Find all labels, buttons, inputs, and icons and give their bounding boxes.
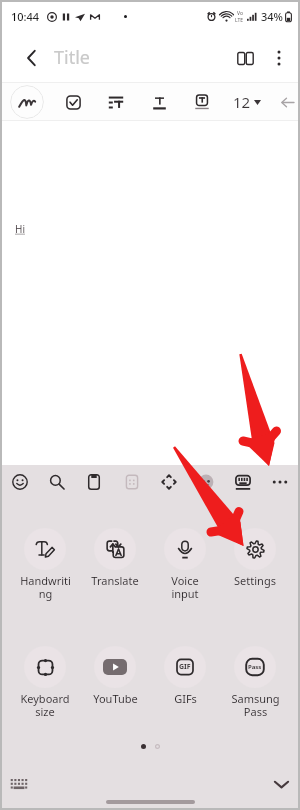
staticText: Translate bbox=[91, 573, 139, 588]
staticText: Voice input bbox=[171, 573, 199, 601]
button[interactable]: Voice input bbox=[150, 528, 220, 601]
button[interactable]: Hide keyboard bbox=[267, 770, 295, 798]
button[interactable]: Search bbox=[42, 467, 72, 497]
button[interactable]: Emoji bbox=[5, 467, 35, 497]
staticText: 10:44 bbox=[11, 9, 40, 24]
button[interactable]: 12 bbox=[230, 85, 264, 119]
button[interactable]: Previous bbox=[274, 89, 300, 115]
button[interactable]: Keyboard layout bbox=[228, 467, 258, 497]
staticText: GIFs bbox=[174, 691, 197, 706]
button[interactable]: Back bbox=[14, 41, 48, 75]
button[interactable]: Clipboard bbox=[79, 467, 109, 497]
staticText: 34% bbox=[261, 9, 283, 24]
button[interactable]: Handwriti ng bbox=[10, 528, 80, 601]
button[interactable]: Underline bbox=[142, 85, 176, 119]
staticText: LTE bbox=[235, 17, 244, 24]
button[interactable]: More options bbox=[262, 41, 296, 75]
button[interactable]: Paragraph style bbox=[99, 85, 133, 119]
button[interactable]: Translate bbox=[80, 528, 150, 588]
button[interactable]: Stickers bbox=[191, 467, 221, 497]
staticText: Keyboard size bbox=[20, 691, 70, 719]
staticText: 12 bbox=[233, 92, 251, 112]
staticText: Title bbox=[54, 45, 90, 70]
button[interactable]: Move keyboard bbox=[154, 467, 184, 497]
button[interactable]: Checklist bbox=[56, 85, 90, 119]
button[interactable]: Reading mode bbox=[228, 41, 262, 75]
staticText: Hi bbox=[15, 222, 25, 236]
button[interactable]: Text style bbox=[185, 85, 219, 119]
button[interactable]: Pen bbox=[10, 85, 44, 119]
button[interactable]: Settings bbox=[220, 528, 290, 588]
button[interactable]: Pass bbox=[220, 646, 290, 719]
button[interactable]: Keypad bbox=[117, 467, 147, 497]
staticText: Samsung Pass bbox=[231, 691, 280, 719]
button[interactable]: Show keyboard bbox=[5, 770, 33, 798]
button[interactable]: GIF bbox=[150, 646, 220, 706]
staticText: YouTube bbox=[93, 691, 138, 706]
staticText: Pass bbox=[248, 663, 262, 671]
staticText: Handwriti ng bbox=[20, 573, 71, 601]
button[interactable]: Keyboard size bbox=[10, 646, 80, 719]
staticText: GIF bbox=[179, 662, 191, 672]
staticText: Settings bbox=[234, 573, 276, 588]
button[interactable]: More bbox=[265, 467, 295, 497]
staticText: Vo bbox=[237, 10, 243, 17]
button[interactable]: YouTube bbox=[80, 646, 150, 706]
